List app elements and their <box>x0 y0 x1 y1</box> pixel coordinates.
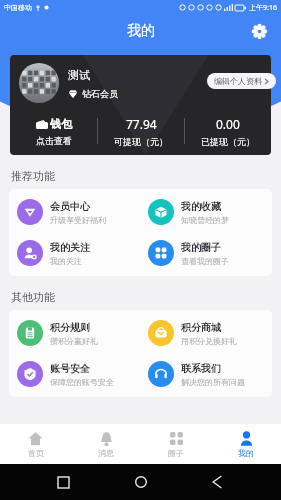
staticText: 中国移动 <box>4 3 32 12</box>
staticText: 我的 <box>238 448 254 458</box>
button[interactable]: 我的收藏 <box>140 196 272 228</box>
staticText: 知晓曾经的梦 <box>181 215 229 225</box>
staticText: 消息 <box>98 448 114 458</box>
staticText: 首页 <box>28 448 44 458</box>
staticText: 钱包 <box>50 117 72 131</box>
staticText: 用积分兑换好礼 <box>181 336 237 346</box>
button[interactable]: 钱包 <box>10 117 97 146</box>
button[interactable]: 77.94 <box>98 116 184 147</box>
staticText: 账号安全 <box>50 362 90 375</box>
staticText: 可提现（元） <box>114 136 168 147</box>
button[interactable]: 积分商城 <box>140 317 272 349</box>
button[interactable]: Home <box>127 468 155 496</box>
staticText: 查看我的圈子 <box>181 256 229 266</box>
staticText: 77.94 <box>126 116 157 132</box>
staticText: 攒积分赢好礼 <box>50 336 98 346</box>
staticText: 圈子 <box>168 448 184 458</box>
button[interactable]: 消息 <box>71 424 141 464</box>
staticText: 点击查看 <box>36 135 72 146</box>
button[interactable]: 积分规则 <box>9 317 140 349</box>
button[interactable]: 联系我们 <box>140 358 272 390</box>
staticText: 测试 <box>68 68 90 82</box>
staticText: 积分商城 <box>181 321 221 334</box>
button[interactable] <box>19 63 59 103</box>
button[interactable]: 我的关注 <box>9 237 140 269</box>
button[interactable]: 首页 <box>0 424 71 464</box>
button[interactable]: 会员中心 <box>9 196 140 228</box>
staticText: 0.00 <box>216 116 240 132</box>
button[interactable]: 我的 <box>211 424 281 464</box>
staticText: 其他功能 <box>11 290 55 304</box>
staticText: 积分规则 <box>50 321 90 334</box>
staticText: 我的关注 <box>50 241 90 254</box>
button[interactable]: 我的圈子 <box>140 237 272 269</box>
staticText: 我的关注 <box>50 256 82 266</box>
staticText: 联系我们 <box>181 362 221 375</box>
button[interactable]: Recents <box>49 468 77 496</box>
staticText: 保障您的账号安全 <box>50 377 114 387</box>
staticText: 钻石会员 <box>82 88 118 99</box>
staticText: 推荐功能 <box>11 169 55 183</box>
button[interactable]: Back <box>204 468 232 496</box>
staticText: 已提现（元） <box>201 136 255 147</box>
staticText: 编辑个人资料 <box>214 76 262 86</box>
staticText: 升级享受好福利 <box>50 215 106 225</box>
button[interactable]: 0.00 <box>185 116 271 147</box>
staticText: 我的 <box>127 22 155 40</box>
staticText: 我的收藏 <box>181 200 221 213</box>
button[interactable]: 圈子 <box>141 424 211 464</box>
staticText: 上午9:16 <box>249 3 277 13</box>
staticText: 我的圈子 <box>181 241 221 254</box>
button[interactable]: 编辑个人资料 <box>207 73 276 89</box>
button[interactable]: 设置 <box>247 19 271 43</box>
staticText: 会员中心 <box>50 200 90 213</box>
staticText: 解决您的所有问题 <box>181 377 245 387</box>
button[interactable]: 账号安全 <box>9 358 140 390</box>
